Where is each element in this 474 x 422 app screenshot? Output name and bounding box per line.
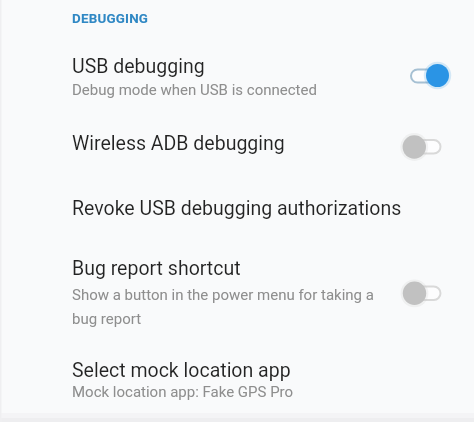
staticText: DEBUGGING (72, 11, 149, 27)
staticText: USB debugging (72, 55, 205, 78)
button[interactable]: Select mock location app (0, 348, 474, 410)
button[interactable]: Bug report shortcut (0, 246, 474, 340)
staticText: Wireless ADB debugging (72, 132, 285, 155)
staticText: Revoke USB debugging authorizations (72, 197, 402, 220)
button[interactable]: Wireless ADB debugging (0, 122, 474, 178)
staticText: bug report (72, 310, 142, 328)
button[interactable]: USB debugging (0, 44, 474, 106)
staticText: Mock location app: Fake GPS Pro (72, 383, 294, 401)
staticText: Show a button in the power menu for taki… (72, 286, 374, 304)
staticText: Debug mode when USB is connected (72, 81, 317, 99)
staticText: Select mock location app (72, 359, 291, 382)
button[interactable]: Revoke USB debugging authorizations (0, 186, 474, 242)
staticText: Bug report shortcut (72, 257, 241, 280)
